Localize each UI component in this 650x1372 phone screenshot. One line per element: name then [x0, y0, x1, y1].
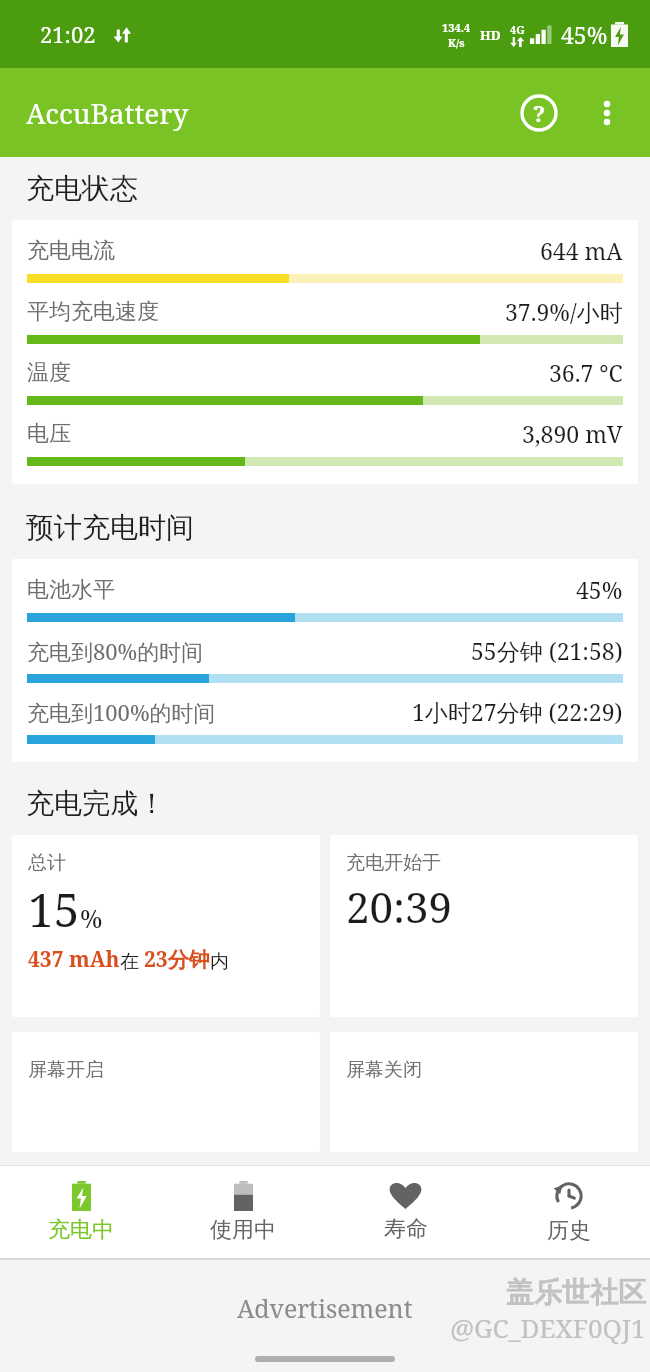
staticText: 45% [576, 574, 623, 605]
button[interactable]: Help [510, 84, 568, 142]
staticText: 寿命 [384, 1215, 428, 1243]
staticText: 21:02 [40, 19, 96, 49]
staticText: 内 [210, 950, 229, 974]
staticText: ? [533, 98, 546, 128]
staticText: 总计 [28, 851, 66, 875]
button[interactable]: 屏幕开启 [12, 1032, 320, 1152]
staticText: 在 [120, 948, 144, 974]
staticText: @GC_DEXF0QJ1 [450, 1310, 646, 1345]
staticText: 充电到80%的时间 [27, 636, 204, 666]
staticText: 充电到100%的时间 [27, 697, 216, 727]
button[interactable]: 屏幕关闭 [330, 1032, 638, 1152]
staticText: 37.9%/小时 [505, 296, 623, 327]
button[interactable]: More options [580, 86, 634, 140]
staticText: 使用中 [210, 1216, 276, 1244]
staticText: 437 mAh [28, 945, 120, 974]
staticText: 3,890 mV [522, 418, 623, 449]
staticText: 4G [510, 22, 525, 37]
staticText: 屏幕开启 [28, 1058, 104, 1082]
staticText: K/s [448, 35, 465, 50]
staticText: Advertisement [237, 1291, 413, 1325]
button[interactable]: 历史 [487, 1166, 650, 1258]
staticText: 预计充电时间 [26, 510, 194, 545]
button[interactable]: 充电电流 [12, 220, 638, 484]
staticText: 充电状态 [26, 171, 138, 206]
staticText: 1小时27分钟 (22:29) [412, 696, 623, 727]
staticText: 电压 [27, 420, 71, 448]
button[interactable]: 充电开始于 [330, 835, 638, 1017]
staticText: 134.4 [442, 20, 471, 35]
staticText: 温度 [27, 359, 71, 387]
staticText: 屏幕关闭 [346, 1058, 422, 1082]
staticText: 36.7 °C [549, 357, 623, 388]
staticText: HD [480, 26, 501, 44]
staticText: 平均充电速度 [27, 298, 159, 326]
button[interactable]: 充电中 [0, 1166, 162, 1258]
button[interactable]: 使用中 [162, 1166, 324, 1258]
staticText: 充电开始于 [346, 851, 441, 875]
staticText: 23分钟 [144, 945, 210, 974]
staticText: 15 [28, 878, 80, 941]
staticText: 充电中 [48, 1216, 114, 1244]
staticText: 644 mA [540, 235, 623, 266]
staticText: 55分钟 (21:58) [471, 635, 623, 666]
button[interactable]: 电池水平 [12, 559, 638, 762]
staticText: 充电完成！ [26, 786, 166, 821]
staticText: 45% [561, 19, 608, 50]
button[interactable]: 寿命 [324, 1166, 487, 1258]
staticText: 历史 [547, 1217, 591, 1245]
staticText: 20:39 [346, 878, 452, 935]
staticText: 盖乐世社区 [506, 1275, 646, 1310]
button[interactable]: 总计 [12, 835, 320, 1017]
staticText: AccuBattery [26, 94, 189, 132]
staticText: 充电电流 [27, 237, 115, 265]
staticText: 电池水平 [27, 576, 115, 604]
staticText: % [80, 901, 103, 935]
